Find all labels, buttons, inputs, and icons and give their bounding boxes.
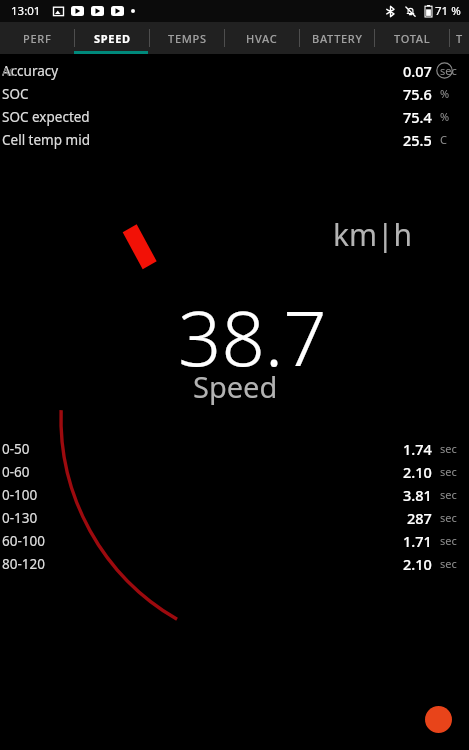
staticText: 75.6 xyxy=(403,84,432,104)
staticText: BATTERY xyxy=(312,31,363,46)
button[interactable]: 60-100 xyxy=(0,529,469,552)
staticText: 287 xyxy=(407,508,432,528)
staticText: 1.71 xyxy=(403,531,432,551)
staticText: 0-100 xyxy=(2,486,38,504)
button[interactable]: 0-100 xyxy=(0,483,469,506)
button[interactable]: SOC expected xyxy=(0,105,469,128)
staticText: C xyxy=(440,132,447,147)
button[interactable]: SPEED xyxy=(75,22,149,54)
staticText: 0-130 xyxy=(2,509,38,527)
staticText: 1.74 xyxy=(403,439,432,459)
staticText: 60-100 xyxy=(2,532,45,550)
staticText: 71 % xyxy=(435,3,461,19)
staticText: sec xyxy=(440,487,457,502)
button[interactable]: 0-50 xyxy=(0,437,469,460)
button[interactable]: Cell temp mid xyxy=(0,128,469,151)
button[interactable]: Record xyxy=(425,706,452,733)
staticText: HVAC xyxy=(246,31,278,46)
staticText: sec xyxy=(440,556,457,571)
staticText: 25.5 xyxy=(403,130,432,150)
staticText: 38.7 xyxy=(178,285,327,389)
button[interactable]: 0-130 xyxy=(0,506,469,529)
staticText: Cell temp mid xyxy=(2,131,90,149)
staticText: 0-50 xyxy=(2,440,30,458)
staticText: Speed xyxy=(193,367,278,406)
staticText: T xyxy=(456,31,463,46)
staticText: sec xyxy=(440,63,457,78)
button[interactable]: Accuracy xyxy=(0,59,469,82)
button[interactable]: TOTAL xyxy=(375,22,449,54)
button[interactable]: PERF xyxy=(0,22,74,54)
staticText: 0.07 xyxy=(403,61,432,81)
staticText: AC xyxy=(2,64,16,79)
staticText: SOC xyxy=(2,85,29,103)
staticText: sec xyxy=(440,441,457,456)
button[interactable]: 0-60 xyxy=(0,460,469,483)
staticText: sec xyxy=(440,464,457,479)
staticText: 3.81 xyxy=(403,485,432,505)
staticText: SPEED xyxy=(94,31,131,46)
button[interactable]: SOC xyxy=(0,82,469,105)
staticText: TEMPS xyxy=(168,31,207,46)
staticText: sec xyxy=(440,533,457,548)
staticText: TOTAL xyxy=(394,31,431,46)
staticText: % xyxy=(440,86,450,101)
button[interactable]: T xyxy=(450,22,469,54)
staticText: 0-60 xyxy=(2,463,30,481)
staticText: km|h xyxy=(333,214,413,255)
button[interactable]: 80-120 xyxy=(0,552,469,575)
staticText: 2.10 xyxy=(403,462,432,482)
button[interactable]: BATTERY xyxy=(300,22,374,54)
staticText: sec xyxy=(440,510,457,525)
staticText: 13:01 xyxy=(11,3,41,19)
staticText: PERF xyxy=(23,31,52,46)
staticText: 80-120 xyxy=(2,555,45,573)
staticText: 2.10 xyxy=(403,554,432,574)
button[interactable]: TEMPS xyxy=(150,22,224,54)
staticText: Accuracy xyxy=(2,62,59,80)
staticText: % xyxy=(440,109,450,124)
staticText: 75.4 xyxy=(403,107,432,127)
button[interactable]: HVAC xyxy=(225,22,299,54)
staticText: SOC expected xyxy=(2,108,90,126)
